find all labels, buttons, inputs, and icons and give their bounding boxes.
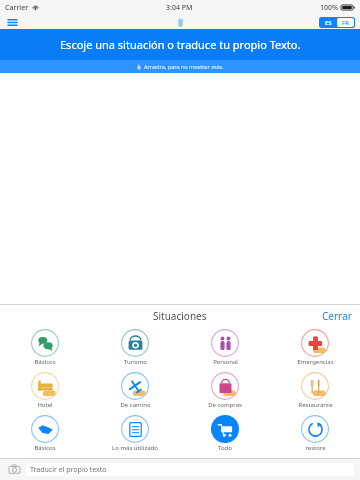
button[interactable]: Básicos (0, 327, 90, 370)
staticText: Personal (213, 358, 238, 366)
button[interactable]: Traducir el propio texto (26, 463, 354, 476)
button[interactable]: Restaurante (270, 370, 360, 413)
button[interactable]: FR (337, 18, 354, 27)
button[interactable]: Turismo (90, 327, 180, 370)
button[interactable]: Camera (6, 461, 22, 477)
staticText: Turismo (124, 358, 147, 366)
button[interactable]: Cerrar (322, 309, 352, 323)
staticText: Básicos (34, 444, 56, 452)
staticText: ES (325, 19, 332, 27)
staticText: FR (342, 19, 349, 27)
staticText: Lo más utilizado (112, 444, 158, 452)
staticText: Escoje una situación o traduce tu propio… (60, 37, 301, 52)
button[interactable]: Menu (4, 15, 20, 29)
staticText: Emergencias (297, 358, 334, 366)
staticText: 3:04 PM (166, 3, 193, 13)
staticText: De compras (208, 401, 242, 409)
staticText: Todo (218, 444, 232, 452)
button[interactable]: De compras (180, 370, 270, 413)
staticText: Restaurante (298, 401, 333, 409)
staticText: Situaciones (153, 309, 207, 323)
staticText: restore (305, 444, 326, 452)
button[interactable]: Emergencias (270, 327, 360, 370)
staticText: Hotel (37, 401, 53, 409)
button[interactable]: Delete (172, 15, 188, 29)
staticText: Cerrar (322, 309, 352, 323)
button[interactable]: Hotel (0, 370, 90, 413)
button[interactable]: ES (320, 18, 337, 27)
button[interactable]: Lo más utilizado (90, 413, 180, 456)
staticText: 100% (320, 3, 338, 13)
staticText: De camino (120, 401, 151, 409)
button[interactable]: Todo (180, 413, 270, 456)
staticText: Básicos (34, 358, 56, 366)
staticText: Traducir el propio texto (30, 465, 107, 475)
staticText: Arrastra, para no mostrar más. (144, 63, 224, 70)
staticText: Carrier (5, 3, 29, 13)
button[interactable]: De camino (90, 370, 180, 413)
button[interactable]: Básicos (0, 413, 90, 456)
button[interactable]: restore (270, 413, 360, 456)
button[interactable]: Personal (180, 327, 270, 370)
